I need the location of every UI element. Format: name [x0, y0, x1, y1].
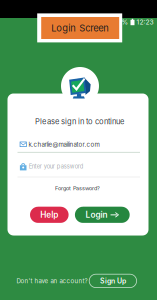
staticText: 6%: [117, 18, 128, 26]
button[interactable]: Forgot Password?: [47, 183, 107, 194]
button[interactable]: Login: [75, 207, 130, 223]
staticText: Help: [40, 210, 58, 220]
staticText: Sign Up: [100, 277, 126, 285]
staticText: Forgot Password?: [55, 185, 100, 191]
staticText: k.charlie@mailinator.com: [28, 141, 99, 148]
button[interactable]: Sign Up: [89, 274, 137, 288]
staticText: Login Screen: [51, 22, 109, 34]
button[interactable]: Help: [30, 207, 69, 223]
staticText: Please sign in to continue: [35, 117, 124, 126]
staticText: Enter your password: [29, 163, 84, 170]
staticText: 12:23: [136, 18, 153, 26]
staticText: Don't have an account?: [16, 277, 87, 285]
staticText: Login: [86, 210, 108, 220]
